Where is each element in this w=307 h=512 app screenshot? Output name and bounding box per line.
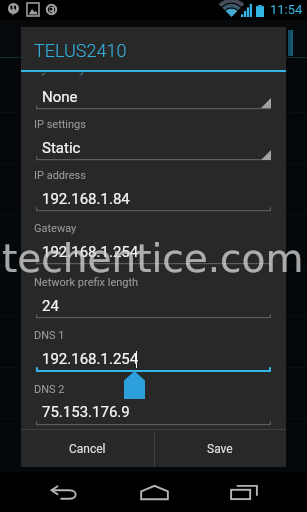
button[interactable]: Save [153, 430, 286, 467]
button[interactable] [36, 366, 271, 373]
staticText: IP address [34, 169, 86, 182]
button[interactable]: Recent apps [216, 472, 272, 512]
staticText: Static [42, 139, 81, 157]
button[interactable] [36, 259, 271, 266]
staticText: 24 [42, 297, 59, 315]
staticText: TELUS2410 [34, 40, 127, 61]
button[interactable] [36, 206, 271, 213]
staticText: techentice.com [2, 236, 304, 281]
staticText: Gateway [34, 222, 77, 235]
staticText: 192.168.1.254 [42, 243, 139, 261]
staticText: None [42, 88, 78, 106]
button[interactable]: Cancel [21, 430, 153, 467]
staticText: Cancel [69, 442, 106, 456]
button[interactable] [36, 155, 271, 162]
staticText: DNS 2 [34, 383, 65, 396]
button[interactable]: Home [126, 472, 182, 512]
button[interactable]: Back [36, 472, 92, 512]
button[interactable] [36, 104, 271, 111]
button[interactable] [36, 313, 271, 320]
staticText: 75.153.176.9 [42, 403, 130, 421]
staticText: 192.168.1.254 [42, 350, 139, 368]
staticText: Save [207, 442, 233, 456]
staticText: 192.168.1.84 [42, 190, 130, 208]
button[interactable] [36, 420, 271, 427]
staticText: IP settings [34, 118, 86, 131]
staticText: 11:54 [270, 2, 303, 17]
staticText: Network prefix length [34, 276, 139, 289]
staticText: DNS 1 [34, 329, 65, 342]
